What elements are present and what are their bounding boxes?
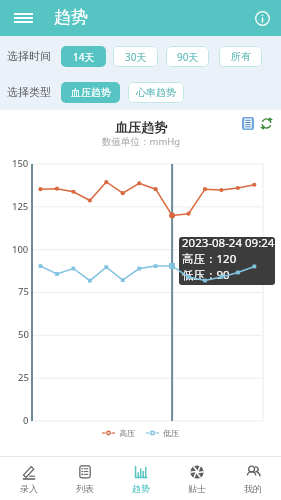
staticText: 50 <box>18 328 29 341</box>
staticText: 血压趋势 <box>71 86 111 99</box>
staticText: 125 <box>12 200 29 213</box>
button[interactable]: Records <box>239 114 257 132</box>
staticText: 低压：90 <box>182 267 230 283</box>
staticText: 高压：120 <box>182 251 237 267</box>
staticText: 录入 <box>20 483 38 494</box>
button[interactable]: 贴士 <box>169 456 225 500</box>
button[interactable]: 趋势 <box>113 456 169 500</box>
staticText: 14天 <box>73 50 95 64</box>
staticText: 75 <box>18 285 29 298</box>
button[interactable]: Menu <box>10 5 36 31</box>
staticText: 选择时间 <box>7 49 51 63</box>
button[interactable]: 录入 <box>0 456 57 500</box>
staticText: 我的 <box>244 483 262 494</box>
button[interactable]: 90天 <box>166 46 209 67</box>
staticText: 高压 <box>119 428 135 438</box>
staticText: 0 <box>23 414 29 427</box>
button[interactable]: 30天 <box>113 46 158 67</box>
button[interactable]: 所有 <box>219 46 262 67</box>
button[interactable]: Info <box>251 7 273 29</box>
staticText: 选择类型 <box>7 85 51 99</box>
button[interactable]: 血压趋势 <box>61 82 120 103</box>
staticText: 血压趋势 <box>115 119 167 135</box>
staticText: 低压 <box>163 428 179 438</box>
staticText: 贴士 <box>188 483 206 494</box>
staticText: 数值单位：mmHg <box>102 135 181 148</box>
button[interactable]: 心率趋势 <box>128 82 184 103</box>
staticText: 100 <box>12 243 29 256</box>
staticText: 所有 <box>231 50 251 63</box>
staticText: 趋势 <box>54 7 88 28</box>
staticText: 25 <box>18 371 29 384</box>
staticText: 心率趋势 <box>136 86 176 99</box>
staticText: 30天 <box>125 50 147 64</box>
button[interactable]: 列表 <box>57 456 113 500</box>
button[interactable]: 14天 <box>61 46 106 67</box>
staticText: 列表 <box>76 483 94 494</box>
button[interactable]: Refresh <box>258 115 275 132</box>
staticText: 趋势 <box>132 483 150 494</box>
staticText: 150 <box>12 157 29 170</box>
button[interactable]: 我的 <box>225 456 281 500</box>
staticText: 90天 <box>177 50 199 64</box>
staticText: 2023-08-24 09:24 <box>182 237 275 251</box>
